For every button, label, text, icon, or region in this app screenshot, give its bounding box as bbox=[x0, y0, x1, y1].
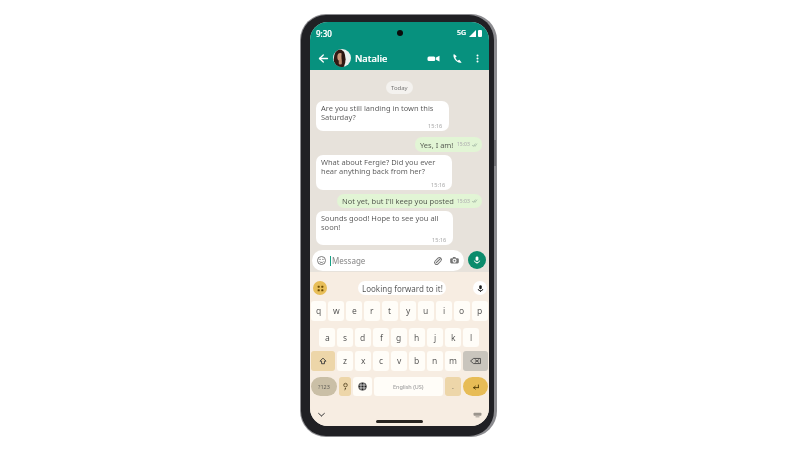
button[interactable]: w bbox=[328, 301, 344, 321]
button[interactable]: u bbox=[418, 301, 434, 321]
button[interactable]: Not yet, but I'll keep you posted bbox=[337, 194, 482, 208]
button[interactable]: j bbox=[427, 328, 443, 347]
staticText: z bbox=[343, 355, 347, 367]
staticText: n bbox=[432, 355, 438, 367]
button[interactable]: What about Fergie? Did you ever hear any… bbox=[316, 155, 452, 190]
staticText: m bbox=[449, 355, 457, 367]
button[interactable] bbox=[353, 377, 372, 396]
button[interactable]: l bbox=[463, 328, 479, 347]
button[interactable]: Toolbar bbox=[313, 281, 327, 295]
button[interactable]: k bbox=[445, 328, 461, 347]
staticText: 15:16 bbox=[431, 181, 446, 189]
button[interactable]: o bbox=[454, 301, 470, 321]
button[interactable]: r bbox=[364, 301, 380, 321]
button[interactable]: Sounds good! Hope to see you all soon! bbox=[316, 211, 453, 245]
staticText: Today bbox=[391, 84, 408, 92]
staticText: 15:16 bbox=[428, 122, 443, 130]
staticText: Not yet, but I'll keep you posted bbox=[342, 196, 454, 206]
button[interactable]: m bbox=[445, 351, 461, 371]
staticText: Natalie bbox=[355, 52, 388, 65]
staticText: r bbox=[370, 305, 374, 317]
button[interactable]: Back bbox=[318, 53, 329, 64]
staticText: p bbox=[477, 305, 483, 317]
staticText: q bbox=[316, 305, 322, 317]
button[interactable]: Attach bbox=[433, 256, 443, 266]
staticText: o bbox=[459, 305, 465, 317]
staticText: Sounds good! Hope to see you all soon! bbox=[321, 213, 449, 232]
button[interactable]: . bbox=[445, 377, 461, 396]
button[interactable] bbox=[311, 351, 335, 371]
button[interactable]: y bbox=[400, 301, 416, 321]
staticText: t bbox=[388, 305, 392, 317]
staticText: ?123 bbox=[318, 383, 330, 390]
button[interactable]: p bbox=[472, 301, 488, 321]
staticText: Yes, I am! bbox=[420, 140, 454, 150]
staticText: h bbox=[414, 332, 420, 344]
staticText: What about Fergie? Did you ever hear any… bbox=[321, 157, 448, 176]
button[interactable] bbox=[463, 377, 488, 396]
button[interactable]: e bbox=[346, 301, 362, 321]
staticText: 9:30 bbox=[316, 28, 332, 39]
button[interactable]: Voice input bbox=[473, 281, 487, 295]
button[interactable]: English (US) bbox=[374, 377, 443, 396]
staticText: k bbox=[451, 332, 456, 344]
staticText: 15:16 bbox=[432, 236, 447, 244]
button[interactable]: Camera bbox=[450, 256, 459, 265]
staticText: Message bbox=[332, 255, 366, 266]
staticText: g bbox=[396, 332, 402, 344]
staticText: d bbox=[360, 332, 366, 344]
staticText: English (US) bbox=[393, 383, 424, 390]
staticText: l bbox=[470, 332, 473, 344]
button[interactable]: Video call bbox=[426, 51, 441, 66]
button[interactable]: g bbox=[391, 328, 407, 347]
button[interactable]: Voice message bbox=[468, 251, 486, 269]
button[interactable]: Keyboard settings bbox=[473, 410, 482, 419]
button[interactable]: More options bbox=[471, 52, 484, 65]
button[interactable]: x bbox=[355, 351, 371, 371]
button[interactable]: v bbox=[391, 351, 407, 371]
button[interactable]: a bbox=[319, 328, 335, 347]
staticText: w bbox=[333, 305, 340, 317]
staticText: a bbox=[325, 332, 330, 344]
button[interactable] bbox=[463, 351, 488, 371]
staticText: 15:03 bbox=[457, 198, 470, 205]
staticText: e bbox=[352, 305, 357, 317]
button[interactable]: f bbox=[373, 328, 389, 347]
staticText: Are you still landing in town this Satur… bbox=[321, 103, 445, 122]
button[interactable]: i bbox=[436, 301, 452, 321]
staticText: 15:03 bbox=[457, 141, 470, 148]
button[interactable]: z bbox=[337, 351, 353, 371]
button[interactable]: h bbox=[409, 328, 425, 347]
staticText: j bbox=[434, 332, 437, 344]
button[interactable]: Call bbox=[451, 52, 464, 65]
button[interactable]: n bbox=[427, 351, 443, 371]
button[interactable]: Yes, I am! bbox=[415, 137, 482, 152]
button[interactable]: Looking forward to it! bbox=[358, 281, 446, 295]
staticText: 5G bbox=[457, 28, 467, 38]
button[interactable]: t bbox=[382, 301, 398, 321]
staticText: f bbox=[380, 332, 383, 344]
button[interactable]: b bbox=[409, 351, 425, 371]
button[interactable]: d bbox=[355, 328, 371, 347]
button[interactable]: ?123 bbox=[311, 377, 337, 396]
staticText: u bbox=[423, 305, 429, 317]
staticText: i bbox=[443, 305, 446, 317]
staticText: x bbox=[361, 355, 366, 367]
button[interactable]: q bbox=[311, 301, 326, 321]
staticText: c bbox=[379, 355, 384, 367]
button[interactable] bbox=[339, 377, 351, 396]
staticText: s bbox=[343, 332, 348, 344]
staticText: b bbox=[414, 355, 420, 367]
button[interactable]: Message bbox=[312, 250, 464, 271]
button[interactable]: Are you still landing in town this Satur… bbox=[316, 101, 449, 131]
button[interactable]: Hide keyboard bbox=[317, 410, 326, 419]
staticText: Looking forward to it! bbox=[362, 283, 443, 294]
staticText: . bbox=[452, 382, 454, 392]
button[interactable]: s bbox=[337, 328, 353, 347]
staticText: y bbox=[406, 305, 411, 317]
button[interactable]: c bbox=[373, 351, 389, 371]
staticText: v bbox=[397, 355, 402, 367]
